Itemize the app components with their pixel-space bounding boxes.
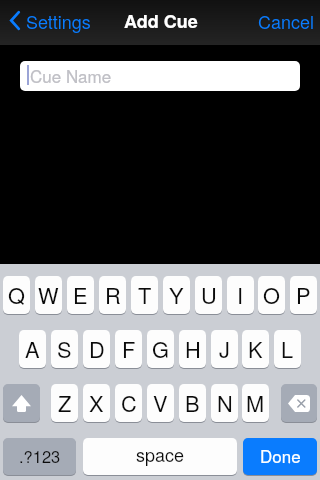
button[interactable]: A — [19, 330, 46, 368]
staticText: S — [57, 333, 72, 364]
button[interactable]: X — [83, 384, 110, 422]
button[interactable]: C — [115, 384, 142, 422]
button[interactable]: I — [227, 276, 254, 314]
staticText: K — [248, 333, 263, 364]
button[interactable]: Y — [163, 276, 190, 314]
button[interactable]: .?123 — [3, 438, 76, 475]
button[interactable]: F — [115, 330, 142, 368]
staticText: F — [122, 333, 136, 364]
staticText: I — [237, 279, 244, 310]
staticText: R — [105, 279, 121, 310]
staticText: U — [201, 279, 217, 310]
staticText: A — [25, 333, 40, 364]
button[interactable]: R — [99, 276, 126, 314]
button[interactable]: Done — [243, 438, 317, 475]
staticText: O — [263, 279, 280, 310]
button[interactable]: space — [83, 438, 237, 475]
staticText: W — [38, 279, 59, 310]
button[interactable]: H — [179, 330, 206, 368]
button[interactable]: Cancel — [258, 0, 315, 43]
button[interactable]: V — [147, 384, 174, 422]
staticText: J — [219, 333, 230, 364]
staticText: Cue Name — [30, 63, 112, 87]
staticText: space — [136, 441, 185, 467]
staticText: E — [73, 279, 88, 310]
button[interactable]: O — [258, 276, 285, 314]
staticText: .?123 — [19, 444, 61, 468]
button[interactable]: S — [51, 330, 78, 368]
staticText: N — [217, 387, 233, 418]
button[interactable]: Delete — [281, 384, 317, 422]
staticText: B — [185, 387, 200, 418]
button[interactable]: B — [179, 384, 206, 422]
staticText: Done — [260, 443, 301, 467]
button[interactable]: E — [67, 276, 94, 314]
button[interactable]: Shift — [3, 384, 40, 422]
staticText: Q — [8, 279, 25, 310]
staticText: Settings — [26, 8, 91, 34]
button[interactable]: U — [195, 276, 222, 314]
button[interactable]: J — [211, 330, 238, 368]
staticText: T — [138, 279, 152, 310]
staticText: D — [89, 333, 105, 364]
button[interactable]: K — [242, 330, 269, 368]
staticText: C — [121, 387, 137, 418]
staticText: M — [246, 387, 265, 418]
button[interactable]: W — [35, 276, 62, 314]
button[interactable]: Q — [3, 276, 30, 314]
staticText: H — [185, 333, 201, 364]
staticText: P — [296, 279, 311, 310]
staticText: G — [152, 333, 169, 364]
staticText: L — [281, 333, 294, 364]
button[interactable]: T — [131, 276, 158, 314]
staticText: Y — [169, 279, 184, 310]
staticText: X — [89, 387, 104, 418]
button[interactable]: N — [211, 384, 238, 422]
staticText: Add Cue — [124, 8, 198, 34]
staticText: Z — [58, 387, 72, 418]
button[interactable]: Z — [51, 384, 78, 422]
button[interactable]: D — [83, 330, 110, 368]
button[interactable]: L — [274, 330, 301, 368]
button[interactable]: P — [290, 276, 317, 314]
button[interactable]: Settings — [10, 0, 91, 43]
button[interactable]: M — [242, 384, 269, 422]
staticText: V — [153, 387, 168, 418]
staticText: Cancel — [258, 8, 315, 34]
button[interactable]: Cue Name — [20, 61, 300, 91]
button[interactable]: G — [147, 330, 174, 368]
